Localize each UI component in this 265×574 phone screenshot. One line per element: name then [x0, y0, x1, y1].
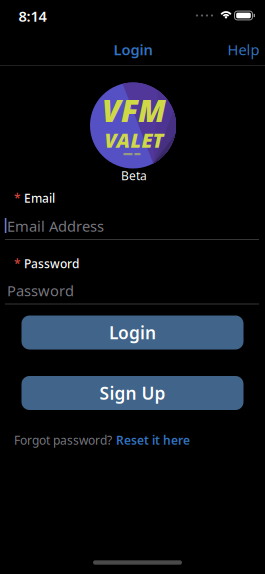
staticText: Password [7, 281, 74, 300]
staticText: Beta [121, 167, 147, 183]
staticText: Email Address [7, 216, 104, 236]
staticText: Sign Up [99, 381, 165, 404]
staticText: Email [24, 190, 55, 206]
staticText: Login [109, 321, 156, 344]
staticText: Login [113, 40, 152, 59]
staticText: * [14, 190, 21, 206]
staticText: VFM [102, 90, 166, 130]
staticText: Help [227, 40, 259, 59]
staticText: Forgot password? [14, 432, 112, 448]
staticText: Reset it here [116, 432, 190, 448]
staticText: VALET [104, 127, 163, 153]
staticText: 8:14 [18, 6, 46, 26]
staticText: Password [24, 255, 79, 271]
staticText: * [14, 255, 21, 271]
